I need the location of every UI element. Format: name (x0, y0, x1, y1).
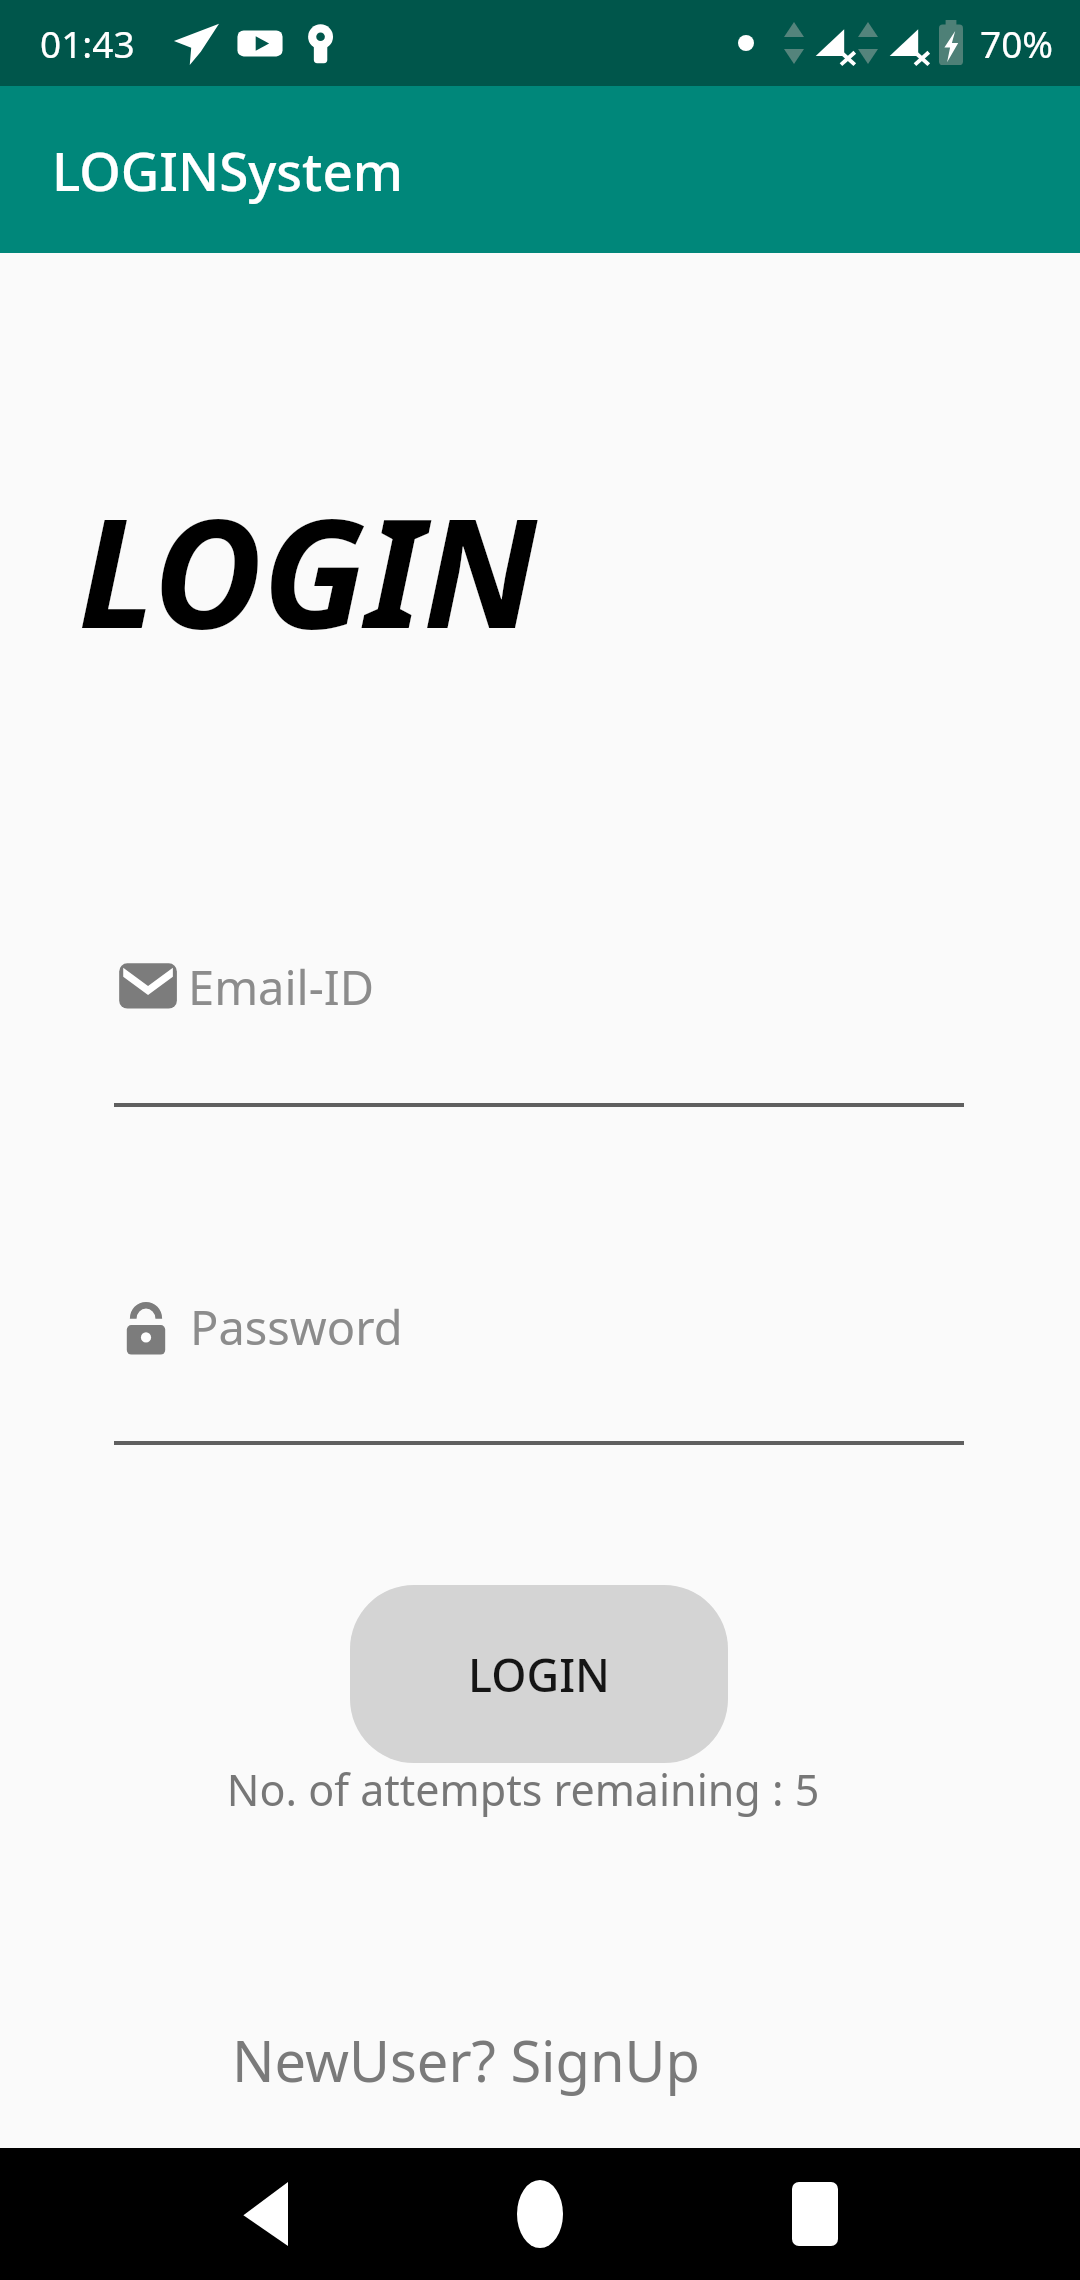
other: Email (114, 960, 188, 1014)
staticText: LOGIN (468, 1644, 610, 1705)
button[interactable]: LOGIN (350, 1585, 728, 1763)
button[interactable]: NewUser? SignUp (0, 2022, 932, 2098)
other: Password (114, 1295, 178, 1359)
staticText: 01:43 (40, 18, 135, 68)
button[interactable]: Home (480, 2154, 600, 2274)
staticText: No. of attempts remaining : 5 (0, 1760, 1046, 1819)
button[interactable]: Email (114, 955, 964, 1107)
staticText: LOGINSystem (52, 134, 404, 206)
staticText: Email-ID (188, 955, 375, 1019)
button[interactable]: Password (114, 1295, 964, 1445)
staticText: NewUser? SignUp (232, 2022, 700, 2098)
staticText: LOGIN (78, 468, 538, 672)
staticText: Password (190, 1295, 403, 1359)
staticText: 70% (980, 18, 1054, 68)
button[interactable]: Recent apps (755, 2154, 875, 2274)
button[interactable]: Back (205, 2154, 325, 2274)
